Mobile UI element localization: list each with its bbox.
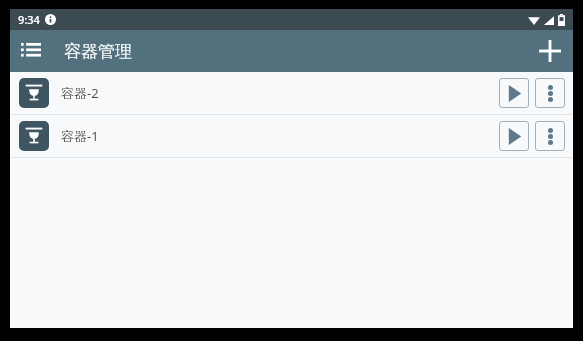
staticText: 容器-1: [61, 127, 499, 145]
button[interactable]: More options: [535, 78, 565, 108]
staticText: 容器-2: [61, 84, 499, 102]
button[interactable]: 容器-1: [10, 115, 573, 157]
button[interactable]: More options: [535, 121, 565, 151]
button[interactable]: Menu: [10, 30, 52, 72]
staticText: 容器管理: [64, 41, 132, 62]
button[interactable]: 容器-2: [10, 72, 573, 114]
staticText: 9:34: [18, 12, 40, 27]
button[interactable]: Add: [527, 30, 573, 72]
button[interactable]: Start: [499, 121, 529, 151]
button[interactable]: Start: [499, 78, 529, 108]
